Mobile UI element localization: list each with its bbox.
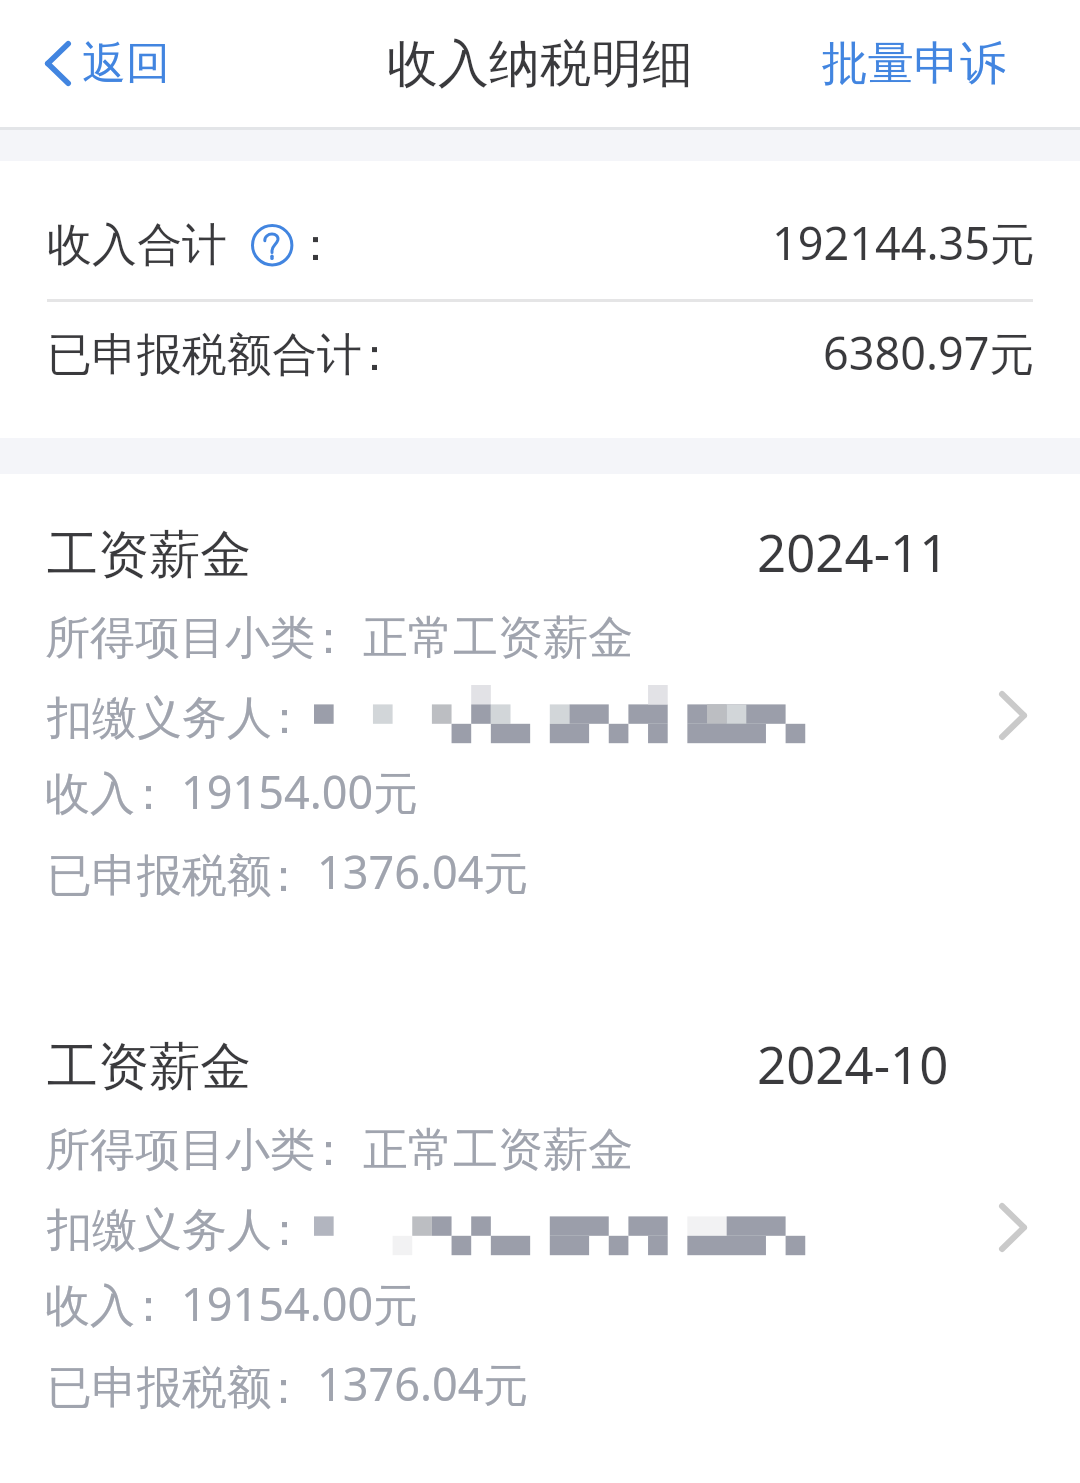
staticText: 收入	[45, 766, 135, 823]
staticText: ：	[126, 1278, 171, 1335]
button[interactable]: 批量申诉	[792, 0, 1080, 127]
staticText: ：	[262, 690, 307, 747]
staticText: ：	[306, 1122, 351, 1179]
staticText: 19154.00元	[181, 1273, 419, 1334]
staticText: ：	[352, 327, 397, 384]
staticText: 收入纳税明细	[387, 32, 693, 96]
staticText: 收入	[45, 1278, 135, 1335]
staticText: ：	[126, 766, 171, 823]
other: 返回	[45, 41, 71, 86]
staticText: 收入合计	[47, 217, 227, 274]
staticText: 已申报税额	[47, 1360, 272, 1417]
other: 查看详情	[999, 691, 1027, 740]
staticText: 正常工资薪金	[363, 1122, 633, 1179]
staticText: 扣缴义务人	[47, 1202, 272, 1259]
staticText: 6380.97元	[823, 322, 1035, 383]
staticText: 所得项目小类	[45, 610, 315, 667]
button[interactable]: 工资薪金	[0, 474, 1080, 911]
staticText: 扣缴义务人	[47, 690, 272, 747]
staticText: 1376.04元	[317, 841, 529, 902]
button[interactable]: 说明	[251, 224, 294, 267]
staticText: ：	[293, 217, 338, 274]
button[interactable]: 返回	[0, 0, 192, 127]
staticText: 返回	[82, 36, 170, 91]
staticText: 19154.00元	[181, 761, 419, 822]
staticText: ：	[306, 610, 351, 667]
button[interactable]: 工资薪金	[0, 986, 1080, 1423]
staticText: ：	[261, 848, 306, 905]
staticText: 1376.04元	[317, 1353, 529, 1414]
staticText: 已申报税额	[47, 848, 272, 905]
staticText: 2024-10	[757, 1029, 949, 1098]
staticText: 批量申诉	[822, 35, 1006, 93]
staticText: 工资薪金	[47, 523, 251, 587]
staticText: 已申报税额合计	[47, 327, 362, 384]
staticText: ：	[261, 1360, 306, 1417]
staticText: 192144.35元	[772, 212, 1035, 273]
staticText: ：	[262, 1202, 307, 1259]
staticText: 工资薪金	[47, 1035, 251, 1099]
other: 查看详情	[999, 1203, 1027, 1252]
staticText: 正常工资薪金	[363, 610, 633, 667]
staticText: 2024-11	[757, 517, 949, 586]
staticText: 所得项目小类	[45, 1122, 315, 1179]
